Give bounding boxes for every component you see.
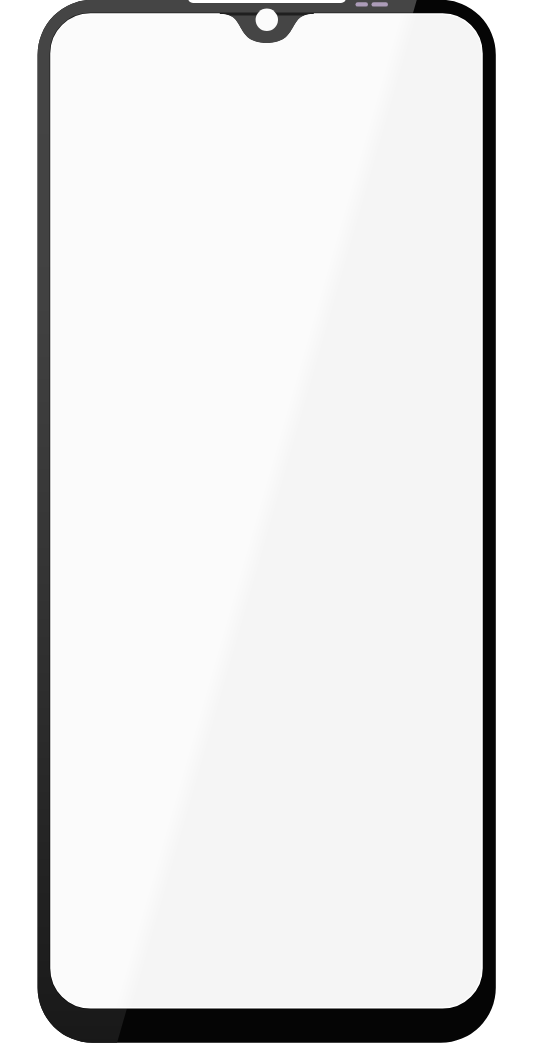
button[interactable]: Smartphone front view (0, 0, 533, 1046)
